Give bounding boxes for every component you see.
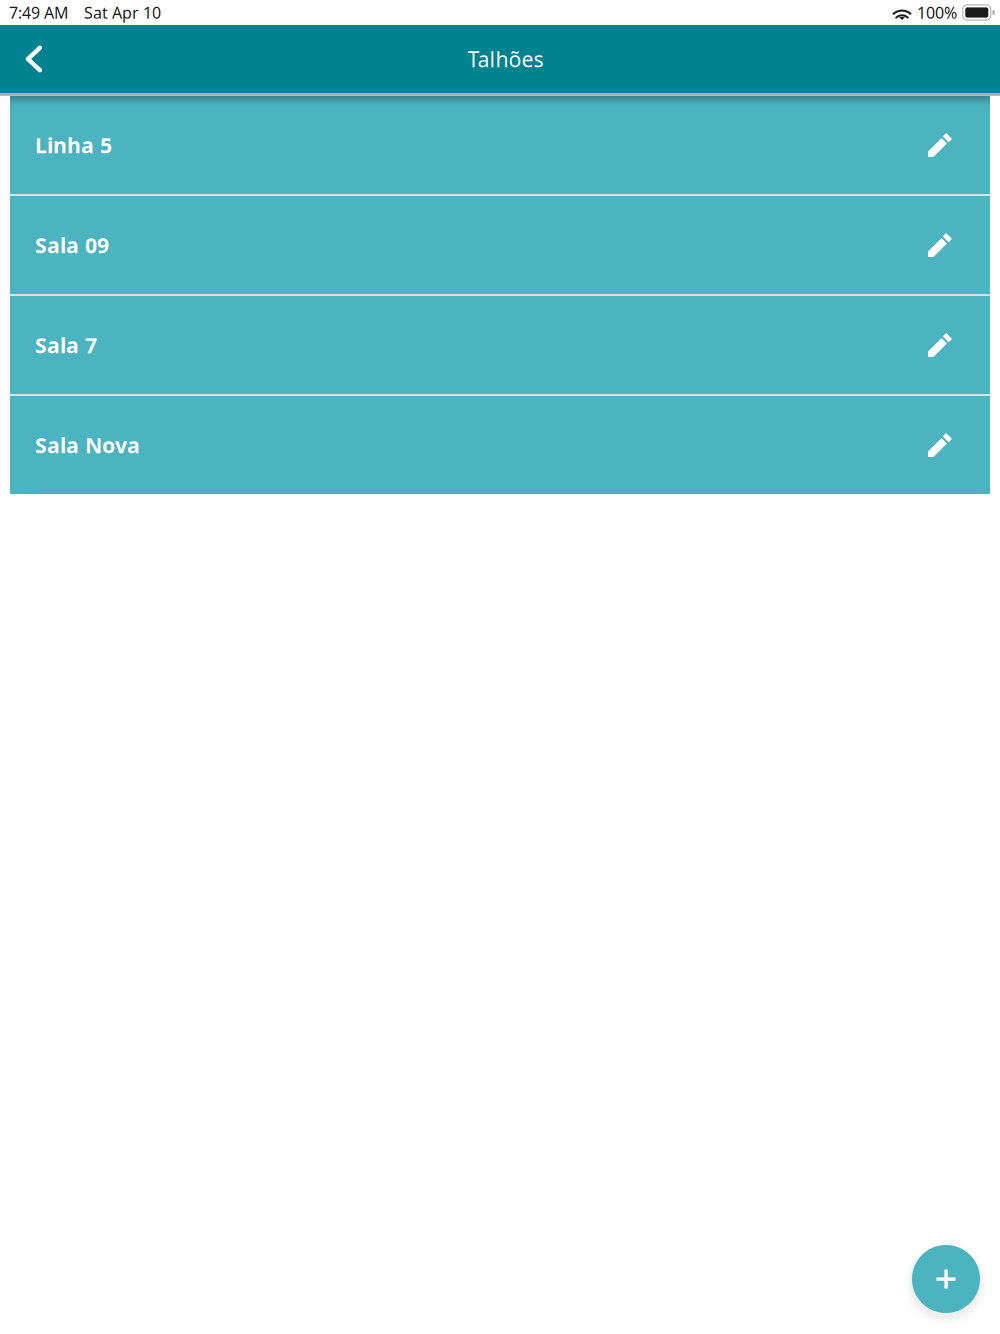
button[interactable]: Edit Linha 5: [928, 133, 952, 157]
staticText: Sala 09: [35, 231, 109, 259]
staticText: 100%: [917, 2, 957, 23]
staticText: Sala 7: [35, 331, 97, 359]
staticText: Sat Apr 10: [84, 2, 161, 23]
button[interactable]: Sala Nova: [10, 396, 990, 494]
staticText: Sala Nova: [35, 431, 140, 459]
button[interactable]: Edit Sala 7: [928, 333, 952, 357]
staticText: 7:49 AM: [9, 2, 69, 23]
button[interactable]: Sala 7: [10, 296, 990, 394]
button[interactable]: Edit Sala 09: [928, 233, 952, 257]
button[interactable]: Edit Sala Nova: [928, 433, 952, 457]
staticText: Talhões: [467, 45, 543, 73]
button[interactable]: Sala 09: [10, 196, 990, 294]
button[interactable]: Add: [900, 1233, 992, 1325]
staticText: Linha 5: [35, 131, 112, 159]
button[interactable]: Back: [6, 25, 62, 93]
button[interactable]: Linha 5: [10, 96, 990, 194]
